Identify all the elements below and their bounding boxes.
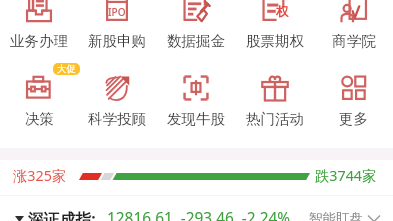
staticText: 股票期权 [246,32,304,50]
button[interactable]: 涨325家 [0,163,393,189]
staticText: 数据掘金 [167,32,225,50]
button[interactable]: 更多 [314,75,393,101]
staticText: 热门活动 [246,110,304,128]
button[interactable]: 新股申购 [78,0,156,23]
button[interactable]: 科学投顾 [78,75,156,101]
staticText: 业务办理 [10,32,68,50]
staticText: 发现牛股 [167,110,225,128]
button[interactable]: 发现牛股 [156,75,235,101]
button[interactable]: 深证成指: [0,206,393,221]
button[interactable]: 股票期权 [235,0,314,23]
staticText: 智能盯盘 [309,210,363,221]
staticText: IPO [108,5,126,19]
button[interactable]: 数据掘金 [156,0,235,23]
button[interactable]: 决策 [0,75,78,101]
staticText: 决策 [25,110,54,128]
button[interactable]: 业务办理 [0,0,78,23]
staticText: 商学院 [332,32,376,50]
staticText: 新股申购 [88,32,146,50]
staticText: 权 [276,4,289,20]
button[interactable]: 热门活动 [235,75,314,101]
staticText: 12816.61 -293.46 -2.24% [107,208,291,221]
staticText: 科学投顾 [88,110,146,128]
staticText: 跌3744家 [315,166,377,186]
staticText: 更多 [339,110,368,128]
staticText: 深证成指: [28,208,96,221]
staticText: 涨325家 [13,166,67,186]
staticText: 大促 [57,63,76,75]
button[interactable]: 商学院 [314,0,393,23]
